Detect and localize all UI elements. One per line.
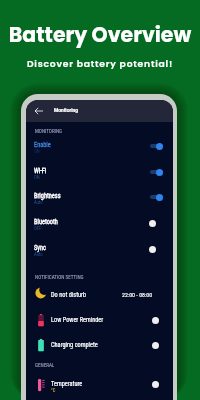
button[interactable]: Charging complete — [26, 332, 173, 357]
button[interactable]: Low Power Reminder — [26, 307, 173, 332]
staticText: GENERAL — [35, 362, 55, 368]
button[interactable]: Bluetooth — [26, 210, 173, 236]
staticText: NOTIFICATION SETTING — [35, 274, 84, 280]
button[interactable]: Do not disturb — [26, 282, 173, 307]
staticText: OFF — [34, 226, 42, 231]
button[interactable]: Back — [30, 102, 48, 120]
staticText: ON — [34, 175, 40, 180]
staticText: Wi-Fi — [34, 167, 47, 174]
button[interactable]: Brightness — [26, 184, 173, 210]
staticText: ON — [34, 149, 40, 154]
staticText: Auto — [34, 252, 43, 257]
staticText: 22:00 - 08:00 — [122, 292, 153, 299]
staticText: Auto — [34, 200, 43, 205]
staticText: MONITORING — [35, 128, 63, 134]
button[interactable]: Temperature — [26, 371, 173, 396]
staticText: Discover battery potential! — [0, 57, 200, 70]
staticText: Do not disturb — [51, 291, 87, 298]
button[interactable]: Wi-Fi — [26, 159, 173, 185]
button[interactable]: Enable — [26, 133, 173, 159]
staticText: Low Power Reminder — [51, 316, 104, 323]
staticText: Bluetooth — [34, 218, 58, 225]
staticText: Battery Overview — [0, 20, 200, 49]
staticText: Enable — [34, 141, 51, 148]
staticText: Brightness — [34, 192, 61, 199]
staticText: Monitoring — [54, 107, 78, 114]
staticText: Temperature — [51, 380, 83, 387]
button[interactable]: Sync — [26, 236, 173, 262]
staticText: Sync — [34, 244, 46, 251]
staticText: Charging complete — [51, 341, 98, 348]
staticText: °C — [51, 388, 56, 393]
